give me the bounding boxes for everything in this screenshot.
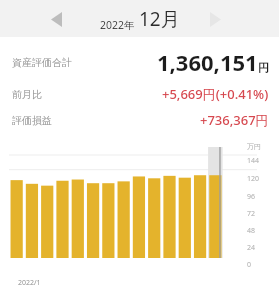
staticText: 前月比: [12, 88, 42, 101]
staticText: 2022/1: [18, 278, 41, 288]
staticText: 0: [247, 260, 252, 270]
button[interactable]: 万円: [0, 137, 279, 300]
staticText: 72: [247, 209, 256, 219]
button[interactable]: 資産評価合計: [12, 47, 269, 77]
staticText: 120: [247, 174, 260, 184]
staticText: 資産評価合計: [12, 56, 72, 69]
staticText: 2022年: [100, 18, 135, 32]
staticText: 144: [247, 156, 260, 166]
staticText: 評価損益: [12, 114, 52, 127]
staticText: 円: [258, 61, 269, 75]
staticText: 96: [247, 192, 256, 202]
staticText: +5,669円(+0.41%): [162, 85, 269, 103]
staticText: 万円: [247, 142, 261, 151]
button[interactable]: 評価損益: [12, 109, 269, 131]
staticText: 48: [247, 226, 256, 236]
button[interactable]: Next month: [203, 7, 227, 31]
staticText: +736,367円: [200, 111, 269, 129]
button[interactable]: 前月比: [12, 83, 269, 105]
staticText: 24: [247, 243, 256, 253]
button[interactable]: Previous month: [44, 7, 68, 31]
staticText: 12月: [139, 6, 180, 32]
staticText: 1,360,151: [157, 47, 258, 77]
